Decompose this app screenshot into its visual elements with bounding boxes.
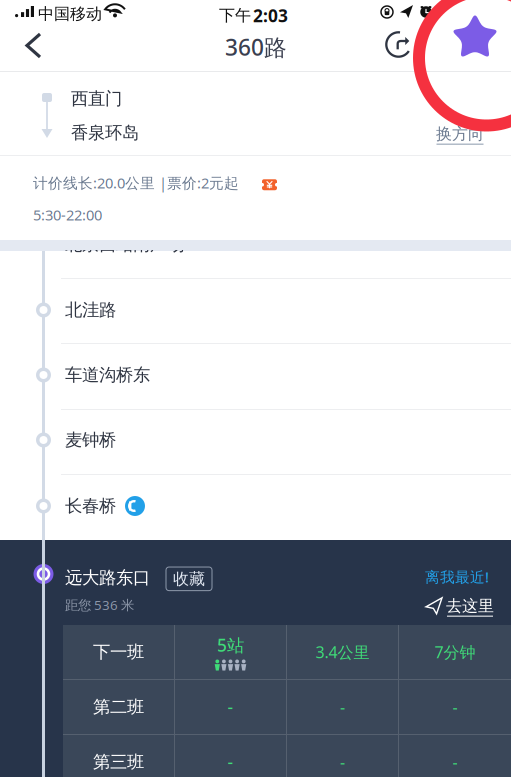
staticText: 3.4公里 [315, 641, 369, 663]
staticText: 香泉环岛 [71, 122, 139, 143]
staticText: - [452, 751, 457, 773]
staticText: 中国移动 [38, 4, 102, 24]
staticText: 北洼路 [65, 299, 116, 321]
button[interactable]: 去这里 [422, 593, 498, 620]
staticText: - [340, 696, 345, 718]
staticText: 2:03 [253, 4, 288, 27]
staticText: 远大路东口 [65, 567, 150, 588]
staticText: 西直门 [71, 88, 122, 109]
button[interactable]: 长春桥 [65, 485, 365, 527]
button[interactable]: 收藏 [166, 567, 212, 591]
staticText: 第三班 [93, 751, 144, 773]
staticText: - [227, 695, 233, 718]
staticText: - [452, 696, 457, 718]
button[interactable]: 北洼路 [65, 289, 365, 331]
staticText: 计价线长:20.0公里 |票价:2元起 [33, 173, 239, 192]
staticText: - [227, 750, 233, 773]
staticText: 距您 536 米 [65, 596, 134, 614]
button[interactable]: 麦钟桥 [65, 419, 365, 461]
staticText: 收藏 [173, 569, 205, 589]
button[interactable]: Favorite [443, 7, 507, 69]
staticText: - [340, 751, 345, 773]
staticText: 离我最近! [425, 567, 489, 586]
staticText: 去这里 [446, 596, 494, 616]
button[interactable]: 换方向 [430, 119, 490, 150]
staticText: 换方向 [436, 124, 484, 144]
button[interactable]: Refresh [375, 21, 422, 68]
staticText: 5站 [217, 633, 244, 656]
button[interactable]: Back [11, 22, 56, 69]
staticText: 长春桥 [65, 495, 116, 517]
button[interactable]: 车道沟桥东 [65, 354, 365, 396]
staticText: 车道沟桥东 [65, 364, 150, 386]
staticText: 5:30-22:00 [33, 205, 102, 224]
staticText: 下一班 [93, 641, 144, 663]
staticText: 麦钟桥 [65, 429, 116, 451]
staticText: 7分钟 [434, 641, 475, 663]
staticText: 北京西站南广场 [65, 234, 184, 255]
staticText: 360路 [225, 32, 287, 62]
staticText: 下午 [219, 6, 251, 25]
staticText: 第二班 [93, 696, 144, 718]
